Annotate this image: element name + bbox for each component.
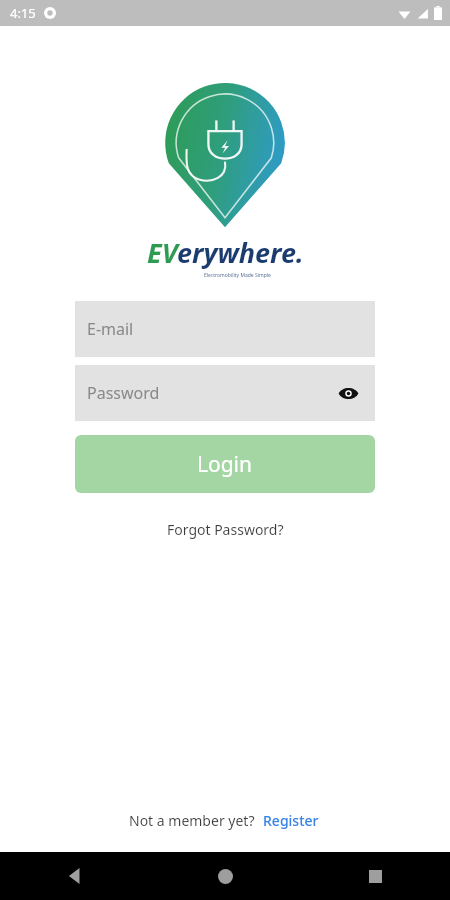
button[interactable]: Forgot Password? [161,514,290,545]
staticText: E-mail [87,318,134,340]
button[interactable]: Show password [333,378,363,408]
staticText: Not a member yet? [129,811,255,830]
staticText: Electromobility Made Simple [204,272,271,279]
button[interactable]: Password [75,365,375,421]
staticText: Forgot Password? [167,520,284,539]
button[interactable]: Home [150,852,300,900]
button[interactable]: Login [75,435,375,493]
button[interactable]: Recent apps [300,852,450,900]
staticText: EVerywhere. [147,234,304,271]
staticText: Register [263,811,319,830]
button[interactable]: Register [261,809,321,832]
button[interactable]: E-mail [75,301,375,357]
staticText: Password [87,382,160,404]
button[interactable]: Back [0,852,150,900]
staticText: Login [197,450,253,479]
staticText: 4:15 [10,4,36,22]
